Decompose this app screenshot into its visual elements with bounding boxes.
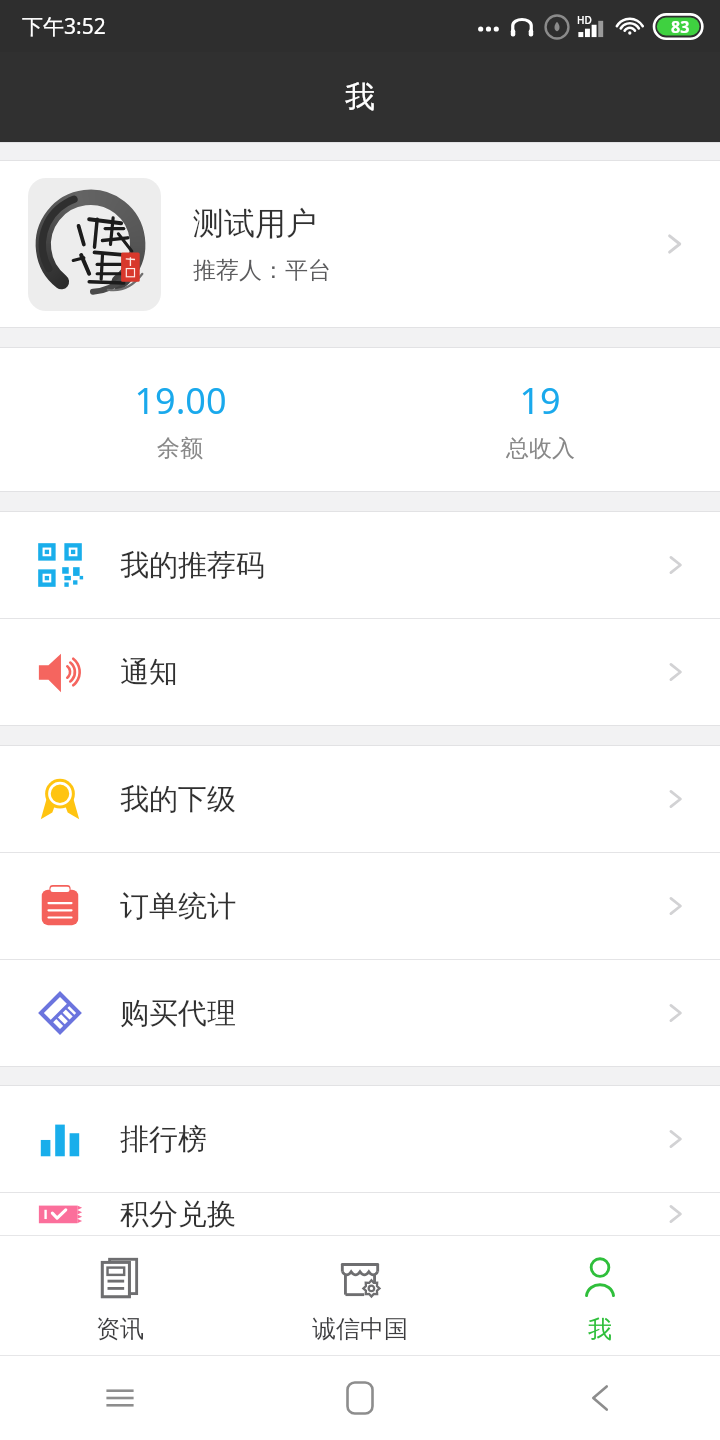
button[interactable]: 诚信中国 xyxy=(240,1236,480,1355)
button[interactable]: 19.00 xyxy=(0,348,360,491)
staticText: 总收入 xyxy=(506,434,575,463)
button[interactable]: 购买代理 xyxy=(0,960,720,1066)
button[interactable]: 我的下级 xyxy=(0,746,720,852)
button[interactable]: Back xyxy=(480,1356,720,1440)
staticText: 推荐人：平台 xyxy=(193,256,331,285)
button[interactable]: 积分兑换 xyxy=(0,1193,720,1235)
button[interactable]: 排行榜 xyxy=(0,1086,720,1192)
staticText: 资讯 xyxy=(96,1314,144,1344)
staticText: 积分兑换 xyxy=(120,1196,236,1233)
staticText: 我的下级 xyxy=(120,781,236,818)
staticText: 83 xyxy=(671,16,690,38)
button[interactable]: 订单统计 xyxy=(0,853,720,959)
button[interactable]: Home xyxy=(240,1356,480,1440)
button[interactable]: 19 xyxy=(360,348,720,491)
staticText: 余额 xyxy=(157,434,203,463)
button[interactable]: 我的推荐码 xyxy=(0,512,720,618)
button[interactable]: 资讯 xyxy=(0,1236,240,1355)
staticText: 订单统计 xyxy=(120,888,236,925)
staticText: 我的推荐码 xyxy=(120,547,265,584)
staticText: HD xyxy=(577,13,592,27)
staticText: 诚信中国 xyxy=(312,1314,408,1344)
staticText: 排行榜 xyxy=(120,1121,207,1158)
staticText: 测试用户 xyxy=(193,204,317,243)
staticText: 19.00 xyxy=(134,376,227,425)
button[interactable]: Recent apps xyxy=(0,1356,240,1440)
staticText: 下午3:52 xyxy=(22,12,106,41)
button[interactable]: 我 xyxy=(480,1236,720,1355)
button[interactable]: 测试用户 xyxy=(0,161,720,327)
staticText: 19 xyxy=(519,376,561,425)
button[interactable]: 通知 xyxy=(0,619,720,725)
staticText: 我 xyxy=(345,78,375,116)
staticText: 购买代理 xyxy=(120,995,236,1032)
staticText: 通知 xyxy=(120,654,178,691)
staticText: 我 xyxy=(588,1314,612,1344)
